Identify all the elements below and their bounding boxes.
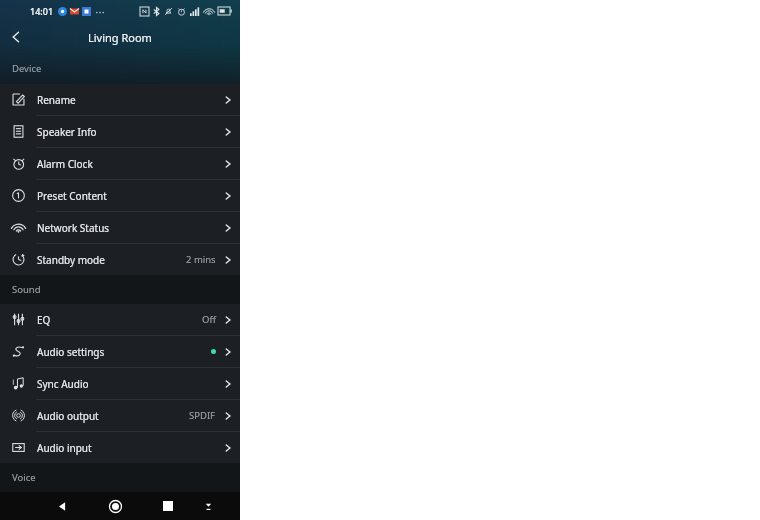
button[interactable]: Network Status <box>0 212 240 244</box>
button[interactable]: Speaker Info <box>0 116 240 148</box>
staticText: Device <box>12 62 42 75</box>
staticText: Network Status <box>37 221 110 235</box>
button[interactable]: Audio settings <box>0 336 240 368</box>
staticText: Audio settings <box>37 345 105 359</box>
button[interactable]: Rename <box>0 84 240 116</box>
staticText: Sync Audio <box>37 377 89 391</box>
staticText: Voice <box>12 471 36 484</box>
staticText: Rename <box>37 93 76 107</box>
staticText: Living Room <box>88 30 152 45</box>
button[interactable]: Sync Audio <box>0 368 240 400</box>
staticText: Off <box>202 313 216 326</box>
button[interactable]: Preset Content <box>0 180 240 212</box>
staticText: Sound <box>12 283 41 296</box>
button[interactable]: Back <box>0 22 32 52</box>
button[interactable]: Standby mode <box>0 244 240 275</box>
staticText: Speaker Info <box>37 125 97 139</box>
staticText: Standby mode <box>37 253 105 267</box>
button[interactable]: Audio output <box>0 400 240 432</box>
button[interactable]: Recents <box>152 492 184 520</box>
staticText: Audio output <box>37 409 99 423</box>
staticText: SPDIF <box>189 409 216 422</box>
button[interactable]: Alarm Clock <box>0 148 240 180</box>
button[interactable]: EQ <box>0 304 240 336</box>
staticText: 2 mins <box>186 253 216 266</box>
button[interactable]: Audio input <box>0 432 240 463</box>
button[interactable]: Home <box>99 492 131 520</box>
staticText: Preset Content <box>37 189 107 203</box>
staticText: Audio input <box>37 441 92 455</box>
staticText: Alarm Clock <box>37 157 93 171</box>
staticText: 14:01 <box>30 5 54 17</box>
button[interactable]: Hide keyboard <box>192 492 224 520</box>
staticText: EQ <box>37 313 51 327</box>
button[interactable]: Back <box>46 492 78 520</box>
